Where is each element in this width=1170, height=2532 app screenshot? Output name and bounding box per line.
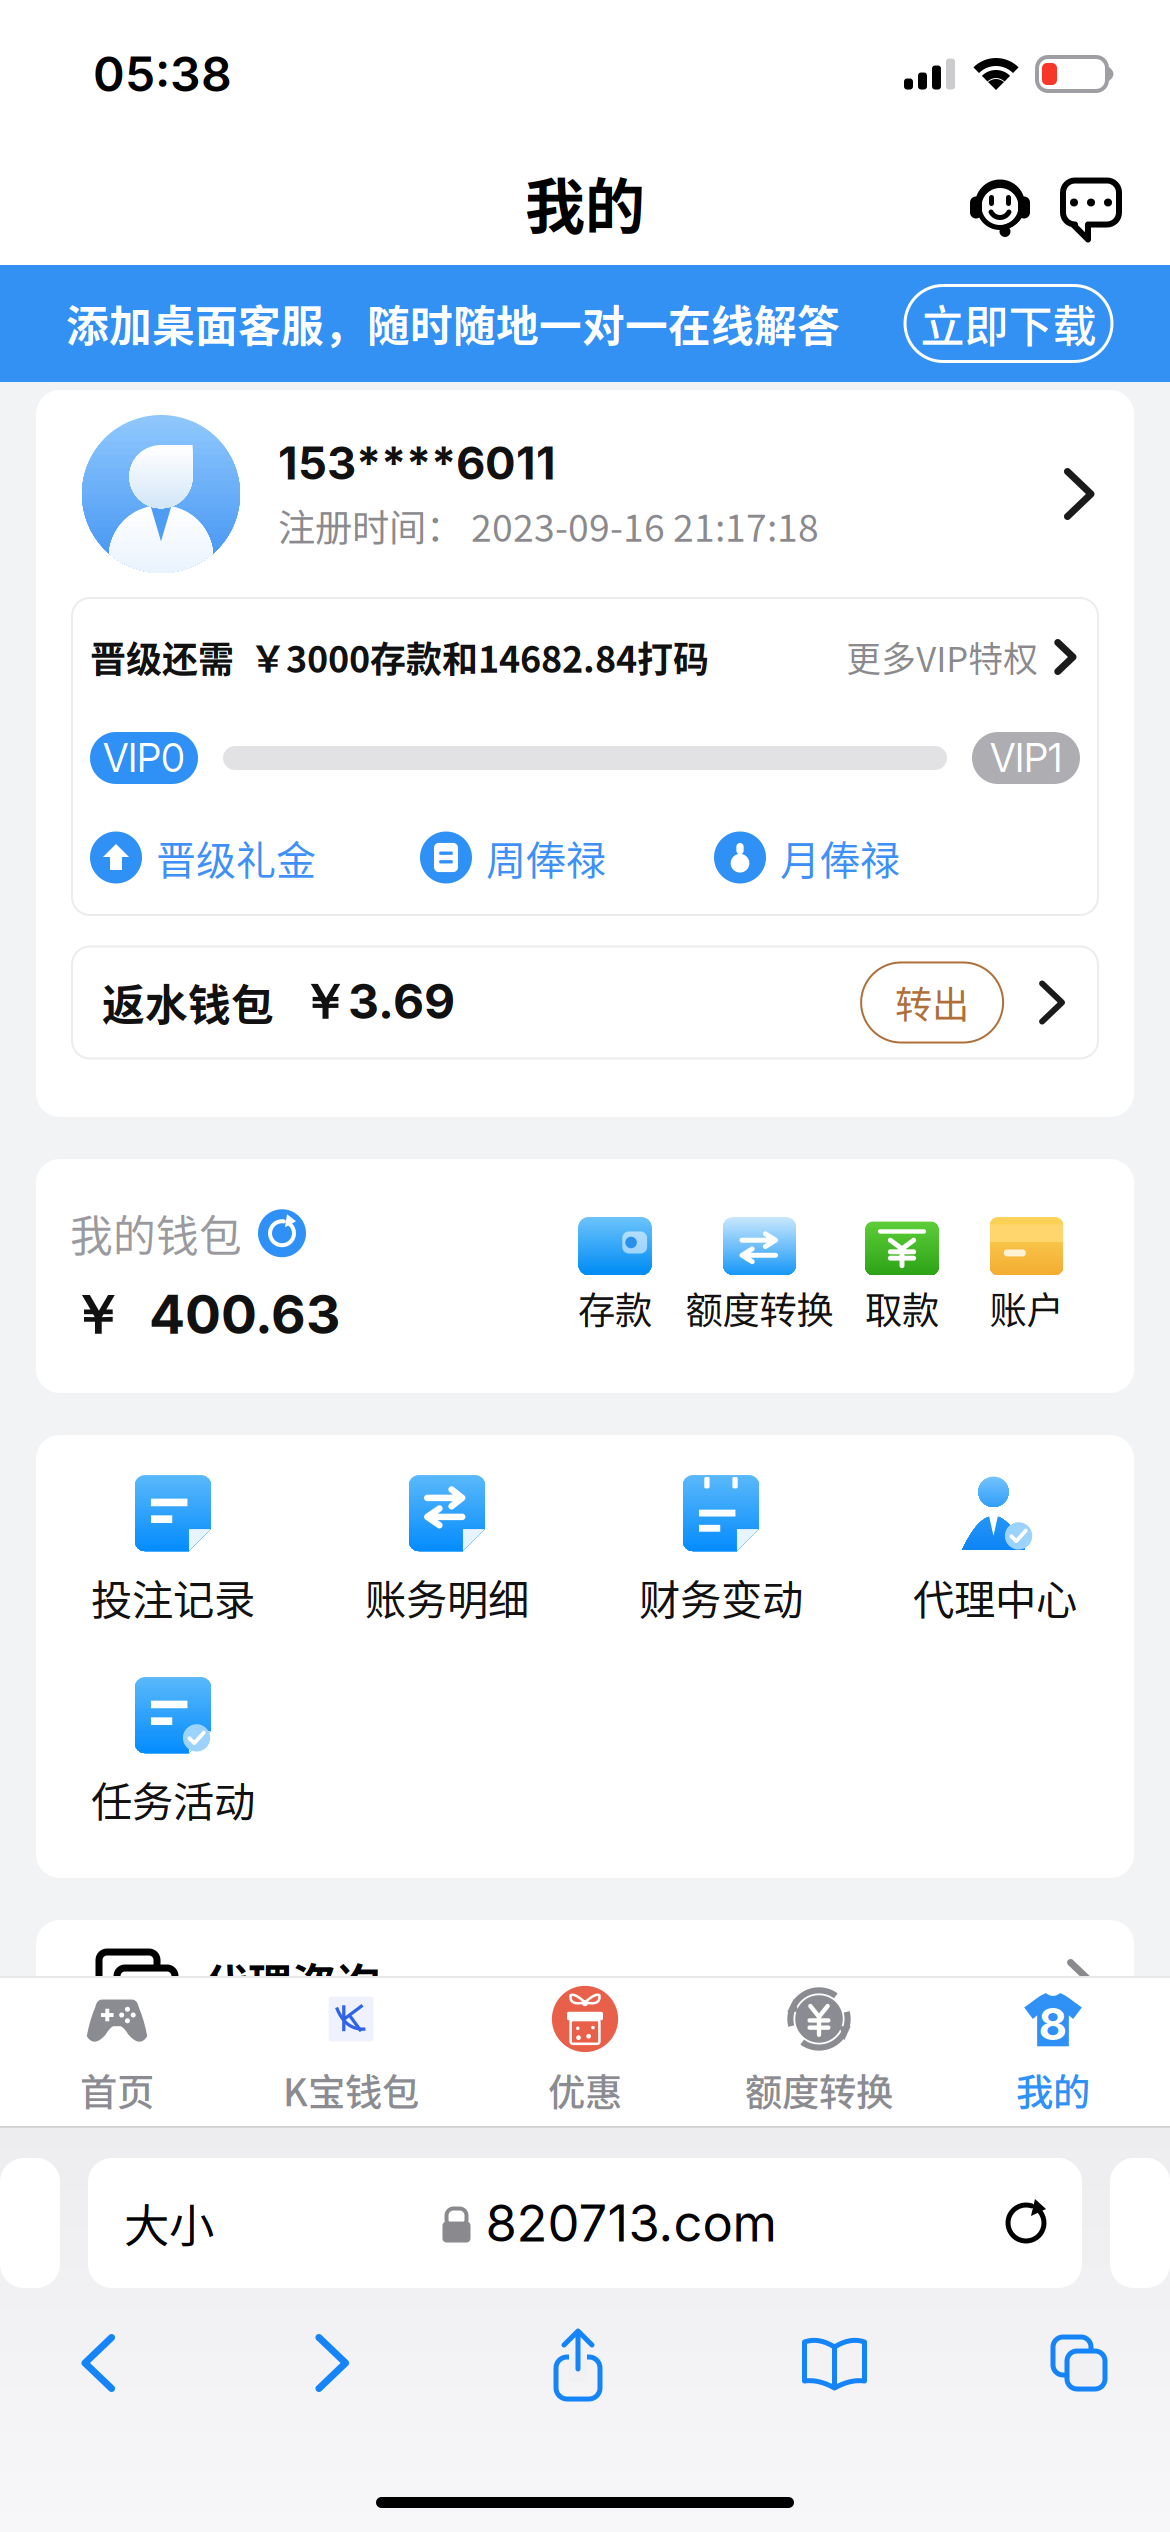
staticText: 月俸禄 [780, 828, 900, 886]
staticText: 添加桌面客服，随时随地一对一在线解答 [66, 293, 840, 354]
button[interactable]: 月俸禄 [714, 828, 900, 886]
staticText: ￥3.69 [300, 972, 455, 1033]
staticText: 周俸禄 [486, 828, 606, 886]
button[interactable]: 取款 [862, 1217, 942, 1335]
staticText: 存款 [578, 1281, 652, 1335]
staticText: 返水钱包 [102, 972, 274, 1033]
button[interactable]: 账户 [986, 1217, 1066, 1335]
button[interactable]: 站内信 [1057, 171, 1125, 241]
staticText: 我的 [1016, 2063, 1090, 2117]
button[interactable]: 在线客服 [969, 173, 1031, 239]
staticText: 大小 [124, 2190, 214, 2256]
button[interactable]: 优惠 [468, 1983, 702, 2117]
staticText: 首页 [80, 2063, 154, 2117]
staticText: 8 [1038, 1997, 1067, 2051]
button[interactable]: 前进 [193, 2313, 475, 2413]
staticText: 代理中心 [913, 1567, 1077, 1627]
staticText: 晋级还需 ￥3000存款和14682.84打码 [90, 631, 709, 683]
staticText: 立即下载 [920, 292, 1096, 355]
button[interactable]: 存款 [575, 1217, 655, 1335]
button[interactable]: 财务变动 [584, 1461, 858, 1641]
button[interactable]: 立即下载 [905, 285, 1112, 361]
staticText: 我的 [525, 159, 645, 246]
button[interactable]: 额度转换 [702, 1983, 936, 2117]
staticText: 账务明细 [365, 1567, 529, 1627]
staticText: 财务变动 [639, 1567, 803, 1627]
staticText: 晋级礼金 [156, 828, 316, 886]
button[interactable]: 标签页 [988, 2313, 1170, 2413]
button[interactable]: 额度转换 [684, 1217, 834, 1335]
button[interactable]: 153****6011 [36, 390, 1134, 598]
staticText: 我的钱包 [70, 1202, 242, 1264]
staticText: VIP1 [990, 735, 1062, 781]
staticText: 转出 [895, 975, 969, 1030]
button[interactable]: 转出 [861, 962, 1003, 1043]
button[interactable]: 晋级礼金 [90, 828, 316, 886]
staticText: 注册时间： 2023-09-16 21:17:18 [278, 498, 819, 552]
staticText: 更多VIP特权 [846, 632, 1038, 682]
staticText: 05:38 [93, 45, 232, 103]
button[interactable]: 首页 [0, 1983, 234, 2117]
staticText: K宝钱包 [283, 2063, 419, 2117]
staticText: ￥ 400.63 [70, 1282, 340, 1350]
button[interactable]: 8 [936, 1983, 1170, 2117]
staticText: 账户 [989, 1281, 1063, 1335]
staticText: 优惠 [548, 2063, 622, 2117]
button[interactable]: 分享 [475, 2313, 681, 2413]
staticText: 820713.com [485, 2192, 776, 2254]
button[interactable]: 代理中心 [858, 1461, 1132, 1641]
staticText: 额度转换 [685, 1281, 833, 1335]
button[interactable]: 代理咨询 [36, 1920, 1134, 2080]
button[interactable]: 大小 [124, 2190, 214, 2256]
staticText: VIP0 [103, 735, 185, 781]
button[interactable]: 刷新余额 [258, 1209, 306, 1257]
button[interactable]: 书签 [681, 2313, 988, 2413]
staticText: 取款 [865, 1281, 939, 1335]
staticText: 任务活动 [91, 1769, 255, 1829]
staticText: 153****6011 [278, 435, 556, 490]
staticText: 额度转换 [745, 2063, 893, 2117]
button[interactable]: 任务活动 [36, 1663, 310, 1843]
button[interactable]: 更多VIP特权 [846, 632, 1080, 682]
button[interactable]: 投注记录 [36, 1461, 310, 1641]
button[interactable]: K宝钱包 [234, 1983, 468, 2117]
button[interactable]: 周俸禄 [420, 828, 606, 886]
staticText: 投注记录 [91, 1567, 255, 1627]
staticText: 代理咨询 [204, 1950, 380, 2014]
button[interactable]: 重新载入 [1004, 2199, 1048, 2247]
button[interactable]: 返回 [0, 2313, 193, 2413]
button[interactable]: 账务明细 [310, 1461, 584, 1641]
